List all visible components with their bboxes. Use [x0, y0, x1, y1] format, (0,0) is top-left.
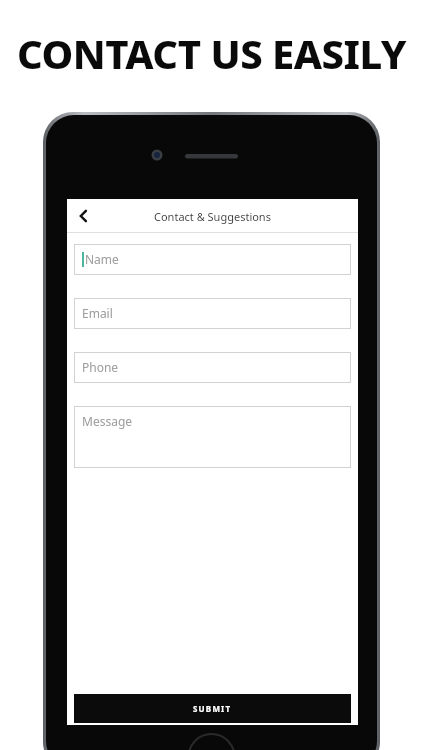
- staticText: Phone: [82, 359, 119, 375]
- button[interactable]: Phone: [74, 352, 351, 383]
- staticText: Message: [82, 413, 133, 429]
- staticText: Email: [82, 305, 113, 321]
- staticText: CONTACT US EASILY: [17, 26, 406, 80]
- button[interactable]: Name: [74, 244, 351, 275]
- staticText: SUBMIT: [193, 703, 232, 714]
- staticText: Contact & Suggestions: [154, 209, 271, 224]
- button[interactable]: SUBMIT: [74, 694, 351, 723]
- button[interactable]: Back: [67, 199, 101, 233]
- button[interactable]: Message: [74, 406, 351, 468]
- button[interactable]: Email: [74, 298, 351, 329]
- staticText: Name: [85, 251, 119, 267]
